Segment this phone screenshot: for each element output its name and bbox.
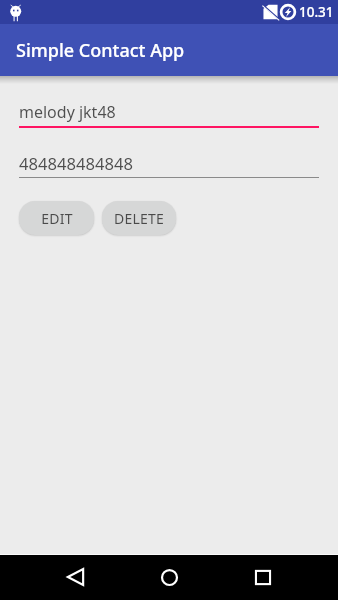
staticText: DELETE xyxy=(114,209,164,228)
button[interactable]: Home xyxy=(145,554,193,600)
staticText: Simple Contact App xyxy=(16,38,185,63)
button[interactable]: melody jkt48 xyxy=(19,95,319,128)
staticText: 10.31 xyxy=(299,3,334,21)
button[interactable]: 484848484848 xyxy=(19,146,319,178)
button[interactable]: Recent apps xyxy=(239,554,287,600)
button[interactable]: Back xyxy=(51,554,99,600)
staticText: EDIT xyxy=(41,209,73,228)
staticText: melody jkt48 xyxy=(19,101,116,123)
staticText: 484848484848 xyxy=(19,152,133,175)
button[interactable]: DELETE xyxy=(102,201,176,235)
button[interactable]: EDIT xyxy=(19,201,94,235)
